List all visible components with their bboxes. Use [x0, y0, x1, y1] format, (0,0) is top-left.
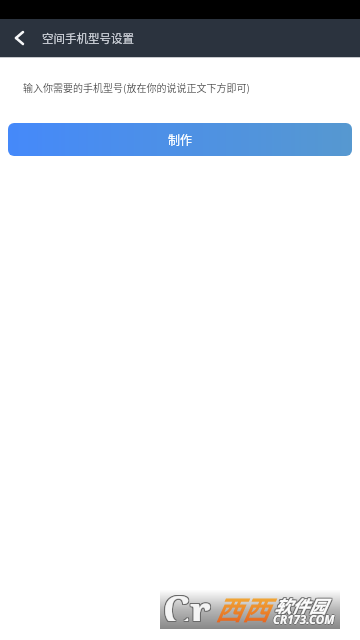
- staticText: CR173.COM: [273, 612, 335, 628]
- staticText: 软件园: [274, 594, 327, 619]
- staticText: CR173.COM: [273, 611, 335, 627]
- staticText: 软件园: [273, 593, 326, 618]
- staticText: 软件园: [275, 594, 328, 619]
- staticText: CR173.COM: [273, 612, 335, 628]
- staticText: Cr: [162, 582, 210, 621]
- staticText: CR173.COM: [273, 613, 335, 629]
- staticText: CR173.COM: [273, 612, 335, 628]
- staticText: Cr: [163, 581, 211, 620]
- staticText: 软件园: [273, 594, 326, 619]
- staticText: 西西: [215, 589, 269, 628]
- staticText: CR173.COM: [273, 612, 335, 628]
- staticText: 软件园: [275, 592, 328, 617]
- staticText: 制作: [168, 131, 193, 148]
- staticText: 软件园: [275, 593, 328, 618]
- staticText: Cr: [163, 582, 211, 621]
- staticText: Cr: [163, 583, 211, 622]
- staticText: 软件园: [274, 593, 327, 618]
- staticText: Cr: [162, 583, 210, 622]
- staticText: CR173.COM: [274, 612, 336, 628]
- staticText: Cr: [164, 582, 212, 621]
- button[interactable]: 制作: [8, 123, 352, 156]
- staticText: Cr: [164, 583, 212, 622]
- staticText: Cr: [162, 581, 210, 620]
- staticText: 空间手机型号设置: [42, 30, 134, 47]
- staticText: 软件园: [274, 592, 327, 617]
- staticText: 输入你需要的手机型号(放在你的说说正文下方即可): [23, 80, 250, 94]
- staticText: CR173.COM: [273, 612, 335, 628]
- staticText: Cr: [164, 581, 212, 620]
- button[interactable]: Back: [0, 19, 38, 57]
- staticText: 软件园: [273, 592, 326, 617]
- staticText: CR173.COM: [272, 612, 334, 628]
